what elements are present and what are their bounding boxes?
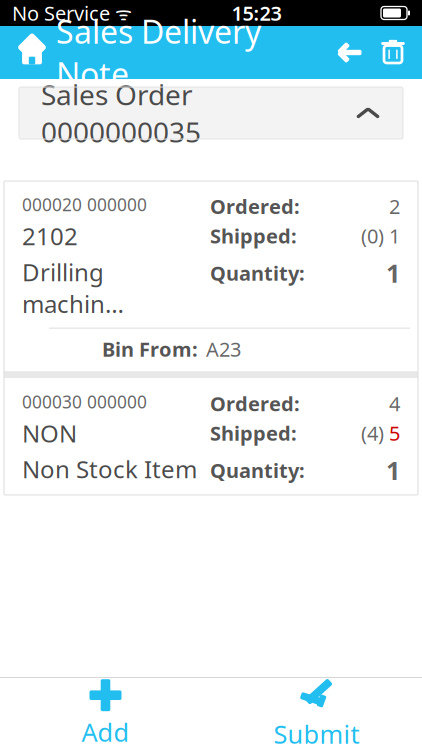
staticText: Submit (273, 717, 359, 750)
button[interactable]: 000020 000000 (4, 181, 418, 371)
staticText: 1 (386, 256, 400, 290)
staticText: 000030 000000 (22, 390, 147, 413)
staticText: Quantity: (210, 260, 305, 286)
staticText: ᯤ (110, 1, 132, 25)
button[interactable]: Delete (372, 37, 422, 67)
staticText: No Service (12, 0, 110, 26)
staticText: 2102 (22, 220, 78, 252)
staticText: 000020 000000 (22, 193, 147, 216)
staticText: (0) (361, 223, 384, 249)
button[interactable]: Submit (211, 678, 422, 750)
staticText: A23 (206, 336, 241, 362)
staticText: Ordered: (210, 193, 300, 220)
staticText: (4) (361, 420, 384, 446)
staticText: Quantity: (210, 457, 305, 483)
staticText: 15:23 (231, 0, 281, 26)
staticText: Sales Order 0000000035 (41, 76, 201, 150)
staticText: Non Stock Item (22, 453, 197, 485)
staticText: Sales Delivery Note (56, 10, 261, 95)
staticText: Ordered: (210, 390, 300, 417)
button[interactable]: 000030 000000 (4, 378, 418, 495)
staticText: Drilling machin… (22, 256, 124, 320)
staticText: 2 (389, 193, 400, 220)
staticText: 1 (386, 453, 400, 487)
staticText: Add (81, 715, 129, 749)
staticText: 4 (389, 390, 400, 417)
staticText: Bin From: (102, 336, 198, 362)
button[interactable]: Add (0, 678, 211, 750)
staticText: Shipped: (210, 223, 297, 249)
staticText: NON (22, 417, 77, 449)
staticText: Shipped: (210, 420, 297, 446)
button[interactable]: Sales Order 0000000035 (19, 87, 403, 139)
button[interactable]: Home (0, 36, 56, 68)
button[interactable]: Back (328, 36, 372, 68)
staticText: 5 (389, 420, 400, 446)
staticText: 1 (389, 223, 400, 249)
